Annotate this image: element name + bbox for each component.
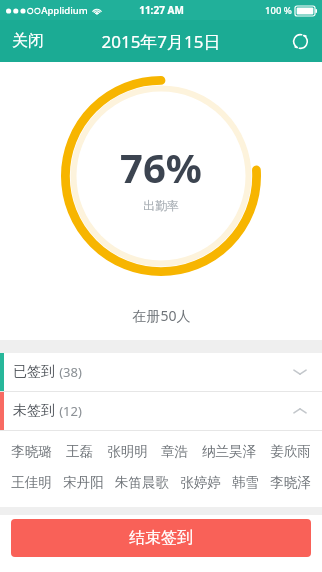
staticText: 已签到 bbox=[13, 363, 55, 381]
staticText: 王磊 bbox=[66, 443, 93, 460]
staticText: (38) bbox=[59, 363, 82, 381]
staticText: (12) bbox=[59, 402, 82, 420]
button[interactable]: 王磊 bbox=[66, 443, 93, 460]
staticText: 11:27 AM bbox=[139, 3, 184, 17]
button[interactable]: 已签到 bbox=[0, 353, 322, 391]
button[interactable]: 姜欣雨 bbox=[270, 443, 311, 460]
staticText: 结束签到 bbox=[129, 528, 193, 548]
staticText: 李晓璐 bbox=[11, 443, 52, 460]
staticText: 朱笛晨歌 bbox=[115, 474, 169, 491]
staticText: 纳兰昊泽 bbox=[202, 443, 256, 460]
button[interactable]: 朱笛晨歌 bbox=[115, 474, 169, 491]
button[interactable]: 关闭 bbox=[0, 23, 56, 59]
button[interactable]: 张婷婷 bbox=[180, 474, 221, 491]
staticText: 76% bbox=[120, 140, 202, 194]
staticText: 100 % bbox=[265, 4, 292, 17]
button[interactable]: 章浩 bbox=[161, 443, 188, 460]
button[interactable]: 王佳明 bbox=[11, 474, 52, 491]
staticText: 章浩 bbox=[161, 443, 188, 460]
staticText: 王佳明 bbox=[11, 474, 52, 491]
staticText: 在册50人 bbox=[132, 306, 191, 325]
staticText: Applidium bbox=[41, 4, 88, 17]
button[interactable]: 韩雪 bbox=[232, 474, 259, 491]
staticText: 李晓泽 bbox=[270, 474, 311, 491]
staticText: 关闭 bbox=[12, 31, 44, 51]
staticText: 出勤率 bbox=[143, 198, 179, 213]
button[interactable]: 未签到 bbox=[0, 392, 322, 430]
button[interactable]: 李晓璐 bbox=[11, 443, 52, 460]
button[interactable]: 李晓泽 bbox=[270, 474, 311, 491]
staticText: 宋丹阳 bbox=[63, 474, 104, 491]
staticText: 韩雪 bbox=[232, 474, 259, 491]
staticText: 张婷婷 bbox=[180, 474, 221, 491]
button[interactable]: 结束签到 bbox=[11, 519, 311, 557]
staticText: 未签到 bbox=[13, 402, 55, 420]
button[interactable]: 张明明 bbox=[107, 443, 148, 460]
button[interactable]: Refresh bbox=[279, 24, 322, 59]
staticText: 张明明 bbox=[107, 443, 148, 460]
button[interactable]: 宋丹阳 bbox=[63, 474, 104, 491]
staticText: 2015年7月15日 bbox=[101, 30, 221, 53]
staticText: 姜欣雨 bbox=[270, 443, 311, 460]
button[interactable]: 纳兰昊泽 bbox=[202, 443, 256, 460]
